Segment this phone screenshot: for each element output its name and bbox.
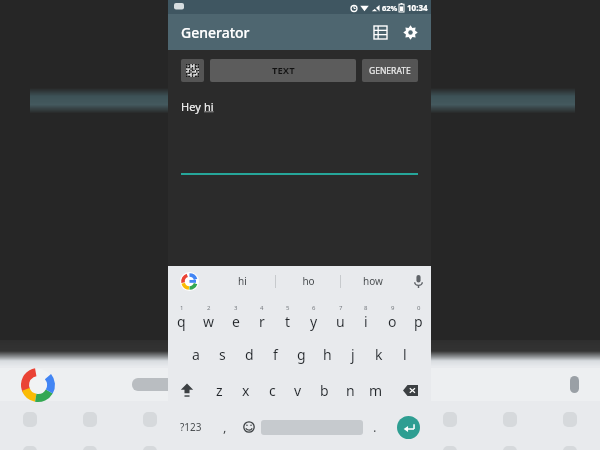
staticText: r xyxy=(259,312,265,331)
staticText: j xyxy=(351,345,355,364)
staticText: x xyxy=(242,381,250,400)
staticText: o xyxy=(388,312,397,331)
button[interactable]: 7 xyxy=(327,296,353,336)
button[interactable]: d xyxy=(236,336,262,372)
button[interactable]: v xyxy=(285,372,311,408)
button[interactable]: Emoji xyxy=(236,408,261,446)
staticText: 10:34 xyxy=(407,2,428,13)
staticText: ho xyxy=(302,274,315,288)
button[interactable]: j xyxy=(340,336,366,372)
button[interactable]: TEXT xyxy=(210,59,356,82)
staticText: 2 xyxy=(207,304,211,312)
button[interactable]: l xyxy=(392,336,418,372)
button[interactable]: 4 xyxy=(249,296,275,336)
button[interactable]: ho xyxy=(276,266,340,296)
staticText: . xyxy=(373,418,377,436)
button[interactable]: Choose barcode type xyxy=(181,59,204,82)
staticText: a xyxy=(192,345,200,364)
staticText: , xyxy=(223,418,227,436)
button[interactable]: s xyxy=(209,336,236,372)
button[interactable]: 8 xyxy=(353,296,379,336)
staticText: y xyxy=(310,312,318,331)
button[interactable]: History list xyxy=(365,17,395,47)
staticText: m xyxy=(369,381,383,400)
button[interactable]: 9 xyxy=(379,296,405,336)
button[interactable]: GENERATE xyxy=(362,59,418,82)
staticText: z xyxy=(216,381,223,400)
button[interactable]: k xyxy=(366,336,392,372)
staticText: p xyxy=(414,312,423,331)
button[interactable]: f xyxy=(262,336,288,372)
staticText: k xyxy=(375,345,383,364)
button[interactable]: Space xyxy=(261,408,363,446)
button[interactable]: 2 xyxy=(195,296,222,336)
button[interactable]: m xyxy=(363,372,389,408)
staticText: 4 xyxy=(260,304,264,312)
button[interactable]: Google search xyxy=(168,266,210,296)
button[interactable]: a xyxy=(182,336,209,372)
button[interactable]: Backspace xyxy=(389,372,431,408)
staticText: 8 xyxy=(364,304,368,312)
staticText: d xyxy=(245,345,254,364)
staticText: f xyxy=(273,345,278,364)
button[interactable]: Hey xyxy=(181,99,418,175)
button[interactable]: , xyxy=(213,408,236,446)
staticText: h xyxy=(323,345,332,364)
button[interactable]: b xyxy=(311,372,337,408)
button[interactable]: Settings xyxy=(395,17,425,47)
staticText: b xyxy=(320,381,329,400)
staticText: q xyxy=(177,312,186,331)
staticText: ?123 xyxy=(180,420,202,434)
staticText: t xyxy=(285,312,291,331)
staticText: 0 xyxy=(417,304,421,312)
staticText: 9 xyxy=(391,304,395,312)
button[interactable]: . xyxy=(363,408,386,446)
staticText: TEXT xyxy=(272,64,295,77)
button[interactable]: h xyxy=(314,336,340,372)
staticText: GENERATE xyxy=(369,65,411,77)
staticText: how xyxy=(363,274,383,288)
staticText: 1 xyxy=(180,304,184,312)
button[interactable]: 6 xyxy=(301,296,327,336)
staticText: g xyxy=(297,345,306,364)
staticText: u xyxy=(336,312,345,331)
staticText: w xyxy=(203,312,215,331)
staticText: 6 xyxy=(312,304,316,312)
button[interactable]: how xyxy=(341,266,405,296)
staticText: 3 xyxy=(234,304,238,312)
staticText: l xyxy=(403,345,407,364)
staticText: v xyxy=(294,381,302,400)
staticText: 62% xyxy=(382,3,398,13)
staticText: Generator xyxy=(181,23,250,42)
staticText: hi xyxy=(204,99,214,114)
staticText: e xyxy=(232,312,240,331)
button[interactable]: z xyxy=(206,372,233,408)
staticText: s xyxy=(219,345,226,364)
staticText: 7 xyxy=(339,304,343,312)
staticText: c xyxy=(269,381,276,400)
button[interactable]: Voice input xyxy=(405,266,431,296)
button[interactable]: x xyxy=(233,372,259,408)
button[interactable]: 1 xyxy=(168,296,195,336)
button[interactable]: 3 xyxy=(222,296,249,336)
button[interactable]: Shift xyxy=(168,372,206,408)
button[interactable]: ?123 xyxy=(168,408,213,446)
button[interactable]: 0 xyxy=(405,296,431,336)
staticText: i xyxy=(364,312,368,331)
button[interactable]: Enter xyxy=(386,408,431,446)
staticText: hi xyxy=(238,274,247,288)
button[interactable]: c xyxy=(259,372,285,408)
button[interactable]: n xyxy=(337,372,363,408)
staticText: 5 xyxy=(286,304,290,312)
button[interactable]: hi xyxy=(210,266,275,296)
button[interactable]: g xyxy=(288,336,314,372)
button[interactable]: 5 xyxy=(275,296,301,336)
staticText: n xyxy=(346,381,355,400)
staticText: Hey xyxy=(181,99,204,114)
